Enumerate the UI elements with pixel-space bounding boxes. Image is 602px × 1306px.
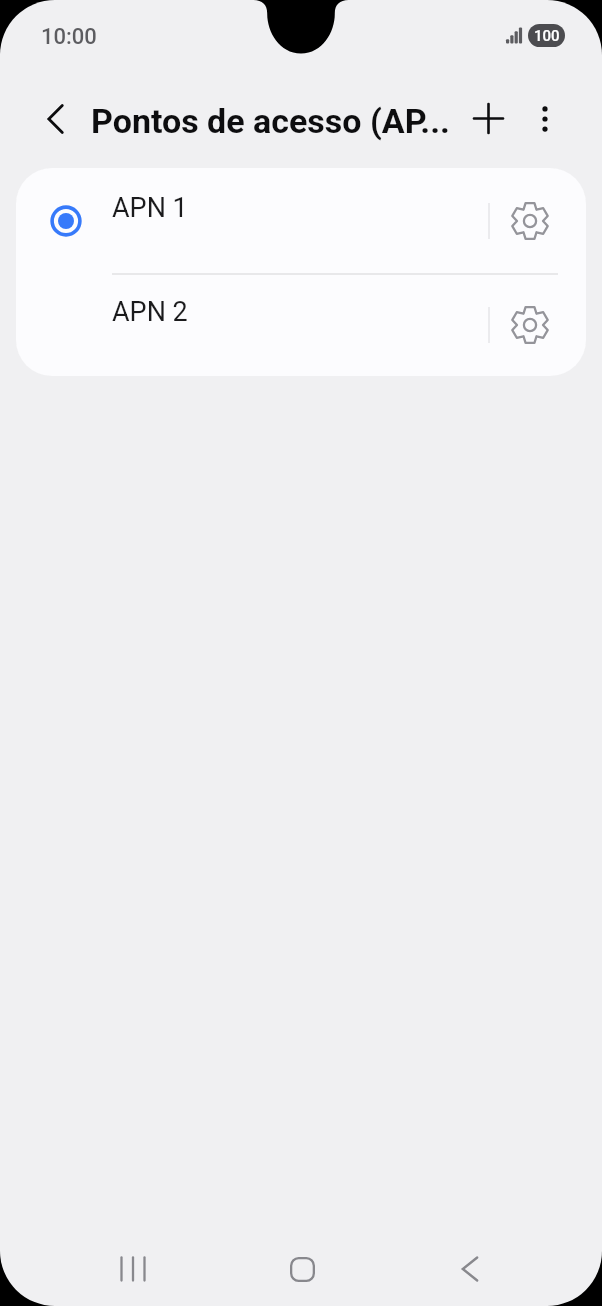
button[interactable]: Navigate up xyxy=(27,91,83,147)
staticText: Pontos de acesso (AP... xyxy=(91,101,450,141)
staticText: 100 xyxy=(534,27,560,45)
button[interactable]: Recent apps xyxy=(98,1243,168,1295)
staticText: APN 1 xyxy=(112,192,188,224)
button[interactable]: Back xyxy=(435,1243,505,1295)
button[interactable]: Edit APN 1 settings xyxy=(494,168,586,272)
button[interactable]: More options xyxy=(518,92,571,145)
button[interactable]: Add APN xyxy=(462,92,515,145)
button[interactable]: Home xyxy=(267,1243,337,1295)
button[interactable]: APN 2 xyxy=(16,272,586,376)
staticText: APN 2 xyxy=(112,296,188,328)
button[interactable]: APN 1 xyxy=(16,168,586,272)
staticText: 10:00 xyxy=(41,24,97,50)
button[interactable]: Edit APN 2 settings xyxy=(494,272,586,376)
